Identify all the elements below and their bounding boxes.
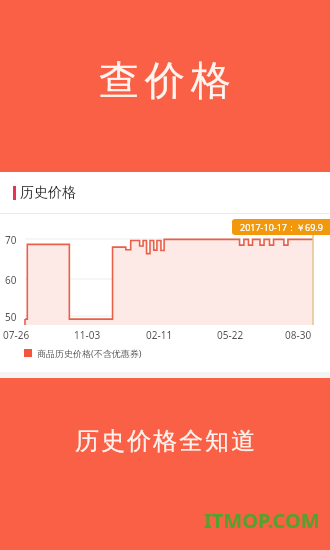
staticText: 05-22 (217, 328, 244, 342)
staticText: ITMOP.COM (204, 507, 320, 534)
staticText: 商品历史价格(不含优惠券) (37, 347, 142, 359)
staticText: 50 (5, 310, 17, 324)
staticText: 02-11 (146, 328, 173, 342)
staticText: 查价格 (96, 55, 234, 105)
button[interactable]: 历史价格 (0, 172, 330, 213)
staticText: 历史价格 (20, 184, 76, 202)
staticText: 历史价格全知道 (74, 426, 256, 456)
staticText: 70 (5, 233, 17, 247)
staticText: 07-26 (3, 328, 30, 342)
staticText: 11-03 (74, 328, 101, 342)
staticText: 08-30 (285, 328, 312, 342)
staticText: 60 (5, 273, 17, 287)
staticText: 2017-10-17：￥69.9 (240, 221, 323, 233)
button[interactable]: Price point 2017-10-17 69.9 yuan (232, 219, 330, 235)
button[interactable]: 商品历史价格(不含优惠券) (24, 347, 142, 359)
